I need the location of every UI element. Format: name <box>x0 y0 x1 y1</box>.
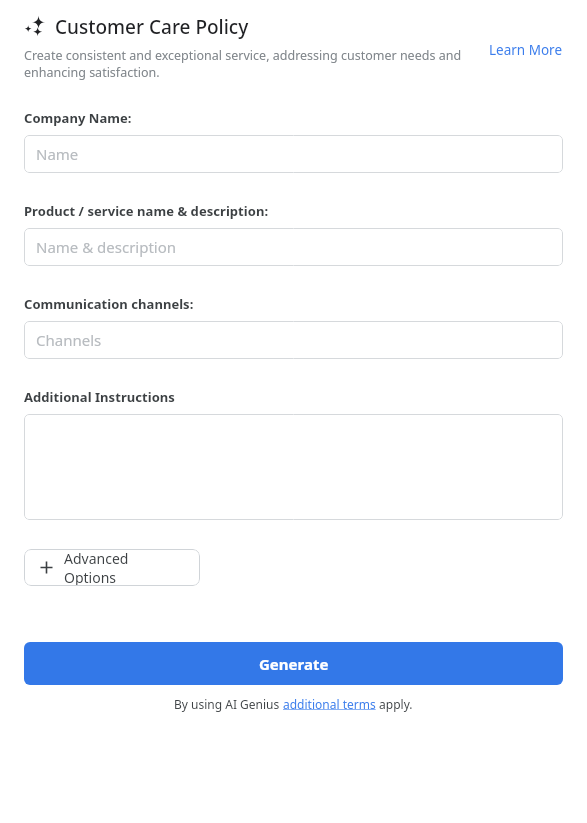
staticText: Name & description <box>36 237 177 257</box>
staticText: Learn More <box>489 41 563 59</box>
staticText: Generate <box>259 654 329 674</box>
staticText: Advanced Options <box>64 549 184 586</box>
staticText: Create consistent and exceptional servic… <box>24 47 479 80</box>
button[interactable]: Advanced Options <box>24 549 200 586</box>
staticText: By using AI Genius <box>174 696 283 712</box>
button[interactable]: Channels <box>24 321 563 359</box>
button[interactable]: Learn More <box>489 41 563 59</box>
button[interactable]: Name & description <box>24 228 563 266</box>
staticText: Company Name: <box>24 109 132 127</box>
staticText: apply. <box>376 696 413 712</box>
staticText: Communication channels: <box>24 295 194 313</box>
button[interactable]: additional terms <box>283 696 376 712</box>
staticText: Channels <box>36 330 102 350</box>
staticText: Name <box>36 144 79 164</box>
staticText: Additional Instructions <box>24 388 175 406</box>
staticText: Customer Care Policy <box>55 14 249 40</box>
button[interactable] <box>24 414 563 520</box>
staticText: Product / service name & description: <box>24 202 269 220</box>
button[interactable]: Name <box>24 135 563 173</box>
button[interactable]: Generate <box>24 642 563 685</box>
staticText: additional terms <box>283 696 376 712</box>
